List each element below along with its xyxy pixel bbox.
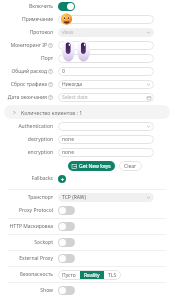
button[interactable] [58, 15, 154, 24]
staticText: vless [62, 29, 74, 36]
button[interactable]: HTTP Маскировка [58, 222, 75, 231]
button[interactable]: Select date [58, 93, 154, 102]
button[interactable]: none [58, 135, 154, 144]
staticText: Sockopt [34, 239, 53, 246]
staticText: Примечание [21, 16, 53, 23]
staticText: Безопасность [19, 271, 53, 278]
button[interactable]: Количество клиентов : 1 [4, 105, 170, 119]
staticText: Proxy Protocol [19, 207, 53, 214]
staticText: TCP (RAW) [62, 194, 86, 201]
staticText: Show [40, 287, 53, 294]
button[interactable]: Никогда [58, 80, 154, 89]
staticText: decryption [27, 136, 53, 143]
button[interactable]: vless [58, 28, 154, 37]
button[interactable]: Включить [58, 2, 75, 11]
staticText: Порт [41, 55, 53, 62]
staticText: Select date [62, 94, 88, 101]
staticText: Пусто [62, 272, 76, 279]
button[interactable]: Show [58, 286, 75, 295]
staticText: Никогда [62, 81, 83, 88]
button[interactable]: Reality [80, 270, 104, 280]
button[interactable]: Пусто [58, 270, 80, 280]
button[interactable] [58, 54, 154, 63]
staticText: Fallbacks [31, 175, 53, 182]
staticText: Reality [84, 272, 100, 279]
button[interactable] [58, 122, 154, 131]
staticText: Протокол [29, 29, 53, 36]
staticText: Транспорт [27, 194, 53, 201]
staticText: Сброс трафика [10, 81, 47, 88]
button[interactable]: none [58, 148, 154, 157]
button[interactable]: 0 [58, 67, 154, 76]
staticText: Мониторинг IP [10, 42, 47, 49]
staticText: Включить [29, 3, 53, 10]
button[interactable]: Sockopt [58, 238, 75, 247]
staticText: HTTP Маскировка [9, 223, 53, 230]
button[interactable]: Add fallback [58, 175, 66, 183]
button[interactable]: External Proxy [58, 254, 75, 263]
staticText: External Proxy [19, 255, 53, 262]
staticText: Дата окончания [7, 94, 47, 101]
staticText: Get New keys [79, 163, 111, 170]
staticText: Authentication [18, 123, 53, 130]
staticText: Общий расход [11, 68, 47, 75]
staticText: none [62, 136, 75, 143]
staticText: Clear [124, 163, 137, 170]
button[interactable]: Get New keys [68, 161, 115, 171]
button[interactable]: Proxy Protocol [58, 206, 75, 215]
staticText: TLS [108, 272, 117, 279]
staticText: encryption [27, 149, 53, 156]
staticText: none [62, 149, 75, 156]
staticText: 0 [62, 68, 65, 75]
button[interactable]: Clear [119, 161, 142, 171]
button[interactable]: TLS [104, 270, 121, 280]
button[interactable] [58, 41, 154, 50]
button[interactable]: TCP (RAW) [58, 193, 154, 202]
staticText: Количество клиентов : 1 [21, 109, 83, 116]
